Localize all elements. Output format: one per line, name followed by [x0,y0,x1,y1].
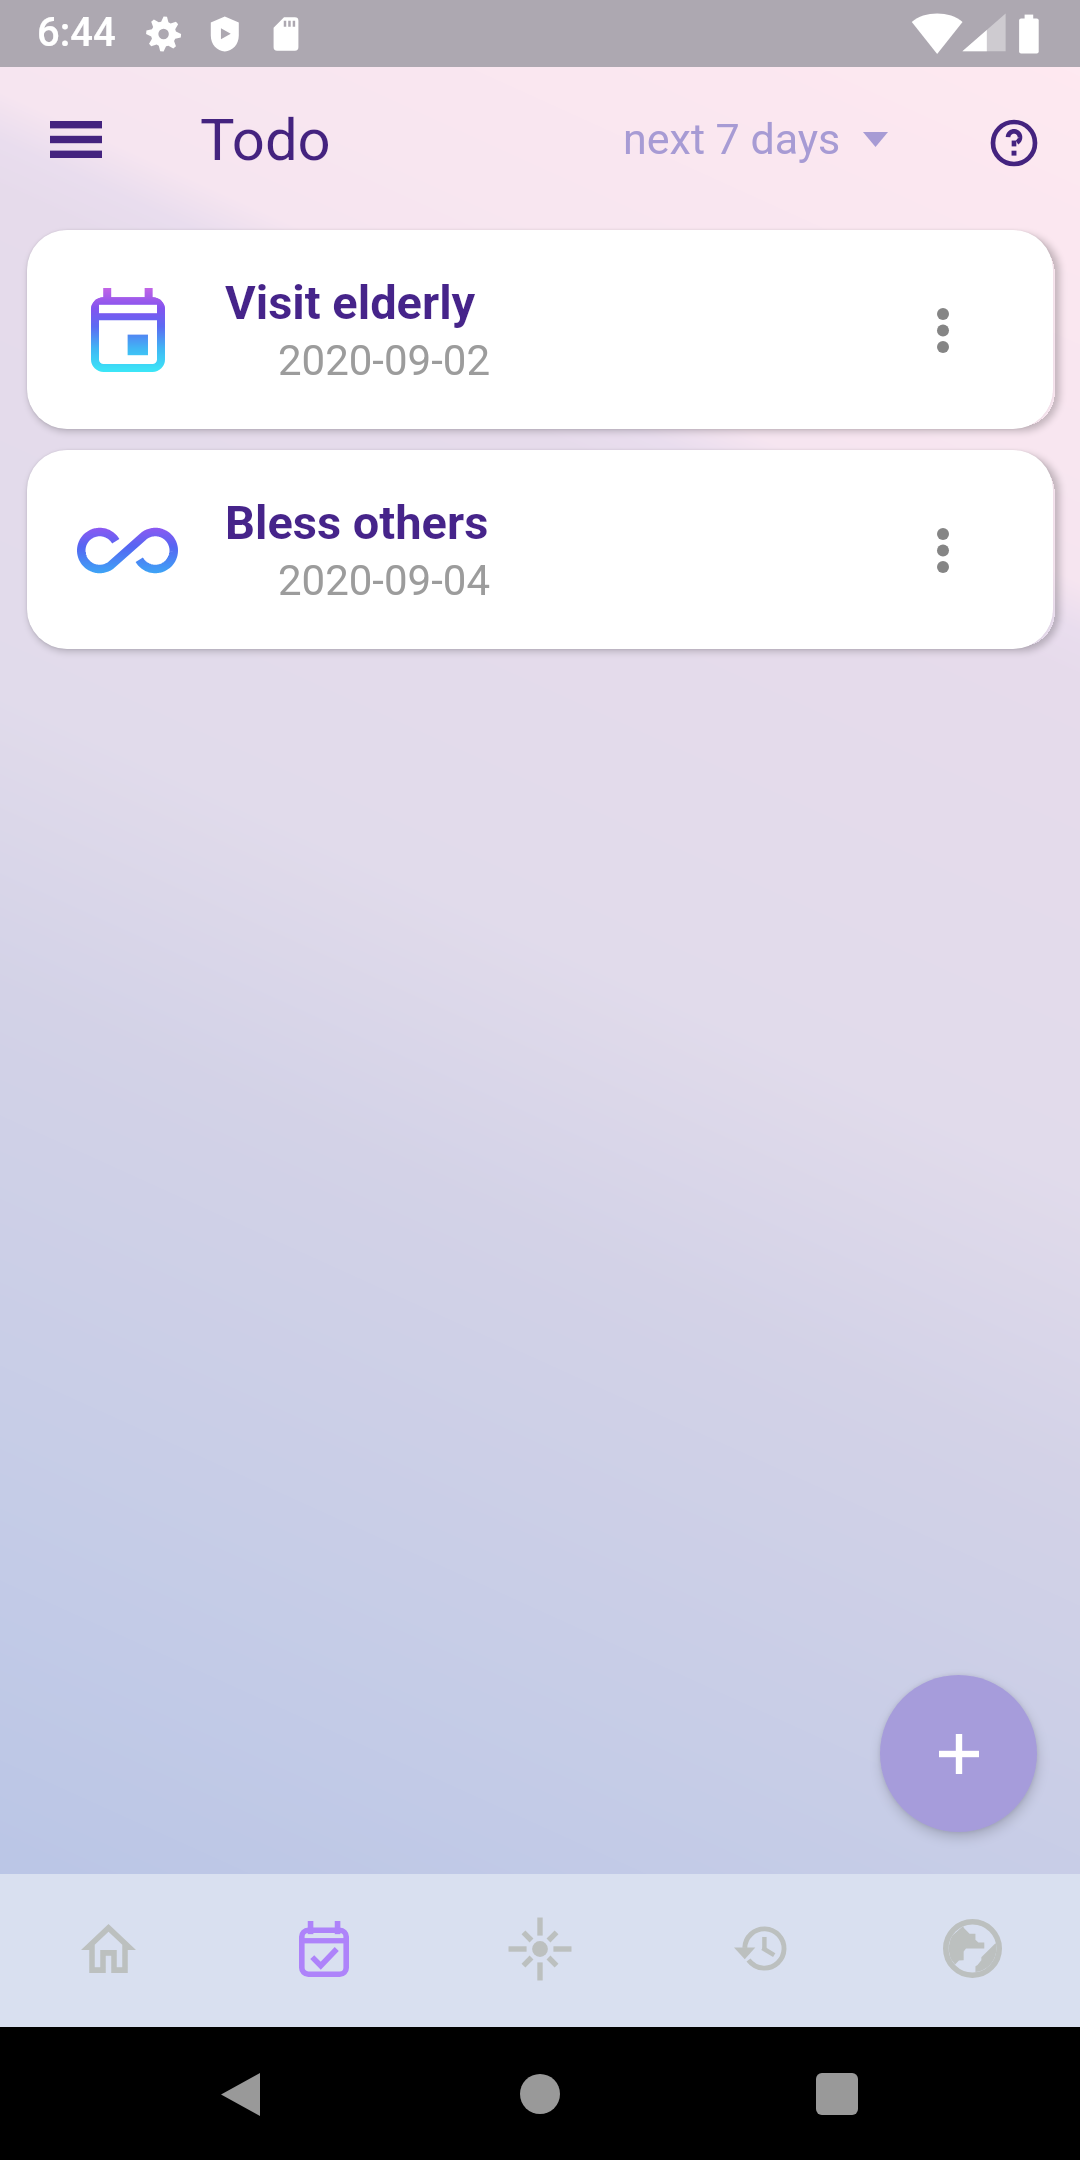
button[interactable]: Visit elderly [27,230,1053,429]
button[interactable]: Home [0,1874,216,2027]
button[interactable]: Add task [880,1675,1037,1832]
button[interactable]: Recent apps [787,2044,887,2144]
button[interactable]: Bless others [27,450,1053,649]
button[interactable]: Calendar [216,1874,432,2027]
button[interactable]: Help [969,98,1059,188]
staticText: Visit elderly [225,275,476,330]
staticText: 6:44 [37,9,116,56]
staticText: Todo [200,106,331,174]
button[interactable]: More options [888,495,998,605]
staticText: 2020-09-04 [225,556,490,605]
button[interactable]: Explore [864,1874,1080,2027]
button[interactable]: History [648,1874,864,2027]
button[interactable]: Back [190,2044,290,2144]
button[interactable]: Today [432,1874,648,2027]
button[interactable]: Home [490,2044,590,2144]
staticText: Bless others [225,495,489,550]
staticText: 2020-09-02 [225,336,490,385]
button[interactable]: Open navigation drawer [32,95,120,183]
button[interactable]: More options [888,275,998,385]
button[interactable]: next 7 days [617,106,894,172]
staticText: next 7 days [623,114,841,164]
